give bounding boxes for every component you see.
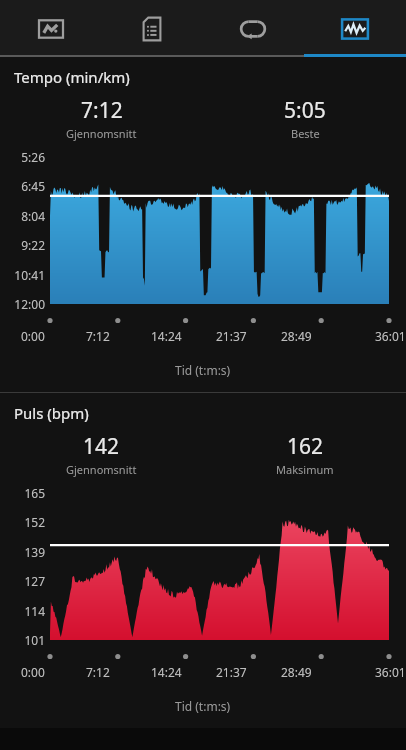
staticText: 114 (0, 603, 45, 619)
staticText: 7:12 (81, 96, 123, 125)
staticText: 10:41 (0, 267, 45, 283)
staticText: 0:00 (21, 664, 45, 680)
staticText: 9:22 (0, 237, 45, 253)
staticText: 6:45 (0, 178, 45, 194)
staticText: 165 (0, 485, 45, 501)
staticText: 139 (0, 544, 45, 560)
staticText: 28:49 (281, 664, 312, 680)
staticText: Tid (t:m:s) (175, 362, 231, 378)
staticText: 36:01 (375, 664, 406, 680)
button[interactable]: Puls (bpm) (0, 393, 406, 728)
staticText: 5:05 (284, 96, 326, 125)
staticText: 142 (83, 432, 120, 461)
staticText: 7:12 (86, 328, 110, 344)
staticText: 21:37 (216, 664, 247, 680)
staticText: 14:24 (151, 664, 182, 680)
staticText: Gjennomsnitt (66, 126, 137, 141)
button[interactable]: Graphs (304, 0, 406, 57)
staticText: 152 (0, 514, 45, 530)
staticText: 12:00 (0, 296, 45, 312)
staticText: 5:26 (0, 149, 45, 165)
staticText: Tempo (min/km) (14, 67, 130, 87)
staticText: Beste (291, 126, 320, 141)
button[interactable]: Tempo (min/km) (0, 57, 406, 392)
staticText: 162 (287, 432, 324, 461)
staticText: Maksimum (276, 462, 334, 477)
staticText: Puls (bpm) (14, 403, 89, 423)
staticText: 14:24 (151, 328, 182, 344)
staticText: 36:01 (375, 328, 406, 344)
staticText: 28:49 (281, 328, 312, 344)
staticText: 21:37 (216, 328, 247, 344)
button[interactable]: Summary (101, 0, 202, 57)
staticText: 8:04 (0, 208, 45, 224)
staticText: 0:00 (21, 328, 45, 344)
staticText: 101 (0, 632, 45, 648)
staticText: 7:12 (86, 664, 110, 680)
button[interactable]: Map (0, 0, 101, 57)
staticText: 127 (0, 573, 45, 589)
staticText: Gjennomsnitt (66, 462, 137, 477)
button[interactable]: Laps (202, 0, 304, 57)
staticText: Tid (t:m:s) (175, 698, 231, 714)
